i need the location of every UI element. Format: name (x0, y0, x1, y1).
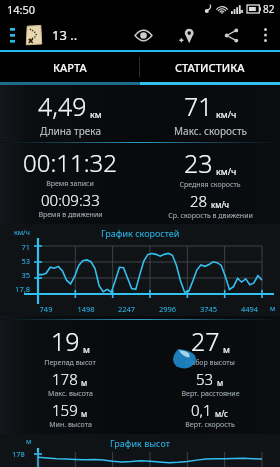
staticText: Длина трека (40, 124, 101, 138)
staticText: м (270, 304, 276, 314)
staticText: м (81, 377, 88, 388)
staticText: 4,49 (38, 89, 87, 123)
staticText: Макс. высота (48, 389, 93, 399)
staticText: 178 (52, 369, 78, 389)
button[interactable]: Share (214, 18, 248, 52)
staticText: 159 (52, 400, 78, 420)
staticText: Верт. скорость (185, 420, 235, 430)
staticText: м (223, 343, 230, 355)
staticText: 23 (184, 146, 213, 180)
staticText: 27 (191, 324, 220, 358)
staticText: км/ч (211, 199, 230, 210)
staticText: 53 (2, 256, 30, 266)
button[interactable]: More options (254, 18, 276, 52)
staticText: 14:50 (7, 2, 36, 17)
staticText: км/ч (14, 228, 30, 238)
staticText: км/ч (216, 108, 237, 120)
staticText: 17,8 (2, 284, 30, 294)
button[interactable]: Add waypoint (170, 18, 204, 52)
staticText: КАРТА (53, 60, 87, 75)
staticText: Верт. расстояние (181, 389, 240, 399)
staticText: Время записи (46, 179, 94, 189)
staticText: км (90, 108, 102, 120)
staticText: 2247 (106, 304, 147, 314)
staticText: 71 (2, 242, 30, 252)
staticText: 00:09:33 (41, 190, 100, 210)
staticText: км/ч (216, 165, 237, 177)
staticText: 2996 (147, 304, 188, 314)
staticText: 00:11:32 (23, 146, 117, 179)
staticText: Средняя скорость (179, 180, 241, 190)
staticText: 19 (51, 324, 80, 358)
staticText: 82 (263, 2, 275, 16)
button[interactable]: Visibility (126, 18, 160, 52)
staticText: м (83, 343, 90, 355)
staticText: Макс. скорость (174, 124, 247, 138)
staticText: График скоростей (101, 227, 180, 239)
button[interactable]: КАРТА (0, 52, 139, 82)
staticText: 35 (2, 270, 30, 280)
staticText: 71 (184, 89, 213, 123)
staticText: м (81, 408, 88, 419)
staticText: 3745 (188, 304, 229, 314)
staticText: 4494 (229, 304, 270, 314)
staticText: Набор высоты (186, 358, 235, 368)
staticText: Ср. скорость в движении (168, 211, 253, 221)
staticText: Перепад высот (44, 358, 96, 368)
staticText: График высот (110, 437, 170, 449)
button[interactable]: Track icon (23, 24, 45, 46)
staticText: 1498 (66, 304, 106, 314)
staticText: м (26, 437, 32, 447)
staticText: Мин. высота (49, 420, 92, 430)
staticText: 0,1 (191, 400, 212, 420)
staticText: 28 (190, 191, 208, 211)
staticText: м (217, 377, 224, 388)
staticText: Время в движении (38, 210, 103, 220)
staticText: м/с (215, 408, 229, 419)
button[interactable]: Navigation drawer (5, 20, 19, 50)
button[interactable]: 13 .. (52, 26, 78, 44)
staticText: 53 (196, 369, 214, 389)
button[interactable]: СТАТИСТИКА (140, 52, 280, 82)
staticText: СТАТИСТИКА (175, 60, 245, 75)
staticText: 178 (12, 449, 25, 459)
staticText: 749 (26, 304, 66, 314)
